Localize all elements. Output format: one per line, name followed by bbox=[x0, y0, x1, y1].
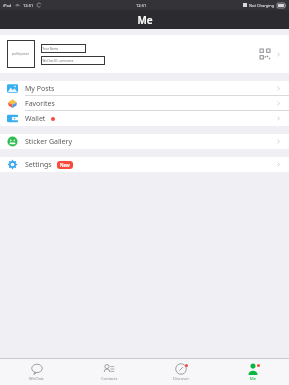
staticText: Me bbox=[137, 13, 153, 27]
staticText: 12:51 bbox=[23, 3, 34, 8]
button[interactable]: Sticker Gallery bbox=[0, 134, 289, 149]
staticText: Favorites bbox=[25, 99, 55, 109]
staticText: iPad bbox=[3, 3, 12, 8]
staticText: Discover bbox=[173, 376, 190, 381]
button[interactable]: Discover bbox=[145, 359, 217, 385]
staticText: WeChat ID: username bbox=[41, 59, 74, 63]
staticText: New bbox=[60, 162, 70, 168]
staticText: Your Name bbox=[41, 47, 59, 51]
staticText: WeChat bbox=[29, 376, 44, 381]
button[interactable]: WeChat bbox=[0, 359, 73, 385]
staticText: Sticker Gallery bbox=[25, 137, 72, 147]
button[interactable]: My Posts bbox=[0, 81, 289, 96]
button[interactable]: Contacts bbox=[73, 359, 145, 385]
staticText: Settings bbox=[25, 160, 52, 170]
other: My QR code bbox=[260, 49, 270, 59]
button[interactable]: Favorites bbox=[0, 96, 289, 111]
staticText: Wallet bbox=[25, 114, 46, 124]
staticText: My Posts bbox=[25, 84, 55, 94]
button[interactable]: Wallet bbox=[0, 111, 289, 126]
button[interactable]: Settings bbox=[0, 157, 289, 172]
staticText: 12:51 bbox=[136, 3, 147, 8]
button[interactable]: Me bbox=[217, 359, 289, 385]
button[interactable]: profile picture bbox=[0, 35, 289, 73]
staticText: Not Charging bbox=[249, 3, 275, 8]
staticText: profile picture bbox=[12, 52, 30, 56]
staticText: Contacts bbox=[101, 376, 118, 381]
staticText: Me bbox=[250, 376, 256, 381]
